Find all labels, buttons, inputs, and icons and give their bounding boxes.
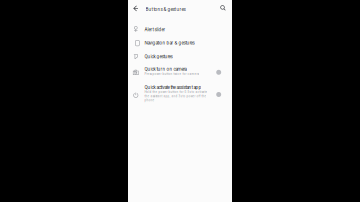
staticText: Navigation bar & gestures — [144, 40, 194, 46]
staticText: phone — [144, 99, 154, 102]
button[interactable]: Quick turn on camera — [128, 63, 232, 78]
staticText: Buttons & gestures — [146, 7, 186, 12]
staticText: Hold the power button for 0.5s to activa… — [144, 90, 207, 94]
staticText: Quick activate the assistant app — [144, 85, 201, 90]
button[interactable]: Navigation bar & gestures — [128, 35, 232, 49]
staticText: the assistant app, and 3s to power off t… — [144, 94, 206, 98]
button[interactable]: Buttons & gestures — [146, 4, 208, 14]
button[interactable]: Quick gestures — [128, 49, 232, 63]
button[interactable]: Search — [218, 3, 228, 13]
button[interactable]: Quick activate the assistant app — [128, 82, 232, 105]
staticText: Quick gestures — [144, 54, 172, 59]
staticText: Quick turn on camera — [144, 66, 186, 72]
button[interactable]: Back — [130, 3, 140, 13]
button[interactable]: Alert slider — [128, 22, 232, 36]
staticText: Press power button twice for camera — [144, 72, 199, 76]
staticText: Alert slider — [144, 27, 165, 32]
